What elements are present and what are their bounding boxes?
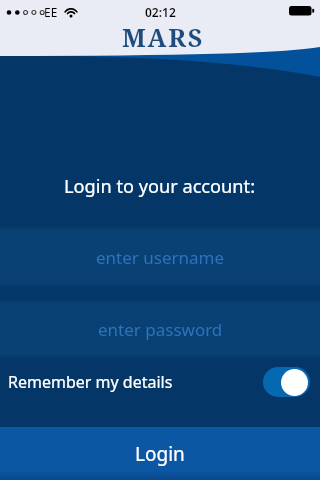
button[interactable]	[263, 367, 310, 397]
button[interactable]: enter username	[0, 226, 320, 288]
button[interactable]: Login	[0, 427, 320, 480]
staticText: enter username	[96, 246, 225, 269]
staticText: Remember my details	[8, 371, 173, 393]
button[interactable]: Remember my details	[8, 362, 320, 402]
button[interactable]: enter password	[0, 299, 320, 359]
staticText: Login to your account:	[64, 174, 256, 199]
staticText: Login	[135, 441, 185, 467]
staticText: enter password	[98, 318, 223, 341]
staticText: 02:12	[145, 4, 176, 20]
staticText: MARS	[122, 20, 205, 54]
staticText: EE	[44, 4, 58, 20]
